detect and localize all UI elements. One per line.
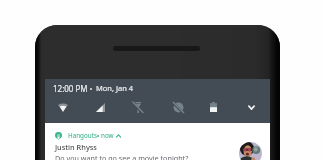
button[interactable]: Auto rotate <box>169 98 187 116</box>
button[interactable]: Battery <box>204 98 222 116</box>
staticText: 12:00 PM <box>53 83 88 94</box>
staticText: Mon, Jan 4 <box>96 83 134 93</box>
staticText: Justin Rhyss <box>55 142 97 152</box>
button[interactable]: Wi-Fi <box>54 98 72 116</box>
button[interactable]: Flashlight <box>129 98 147 116</box>
button[interactable]: Mobile signal <box>91 98 109 116</box>
staticText: Do you want to go see a movie tonight? <box>55 153 189 160</box>
staticText: now <box>101 131 114 140</box>
staticText: Hangouts <box>68 131 97 140</box>
button[interactable]: Expand quick settings <box>242 98 260 116</box>
